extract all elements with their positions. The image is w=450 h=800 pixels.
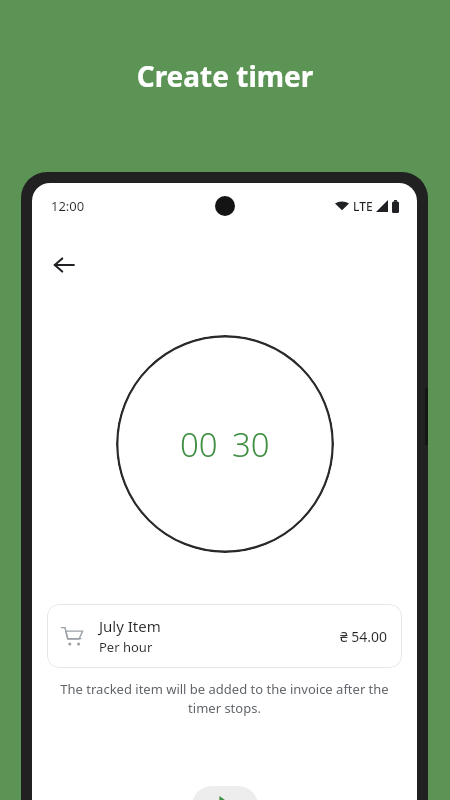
button[interactable]: Start timer: [192, 786, 258, 800]
staticText: 30: [232, 422, 270, 467]
staticText: LTE: [353, 198, 373, 214]
staticText: Per hour: [99, 638, 153, 656]
staticText: Create timer: [0, 57, 450, 95]
button[interactable]: July Item: [47, 604, 402, 668]
staticText: ₴ 54.00: [340, 627, 388, 646]
staticText: 00: [180, 422, 218, 467]
button[interactable]: Back: [40, 241, 88, 289]
button[interactable]: 00: [116, 335, 334, 553]
staticText: The tracked item will be added to the in…: [58, 680, 391, 717]
staticText: 12:00: [51, 197, 85, 215]
staticText: July Item: [99, 616, 161, 636]
